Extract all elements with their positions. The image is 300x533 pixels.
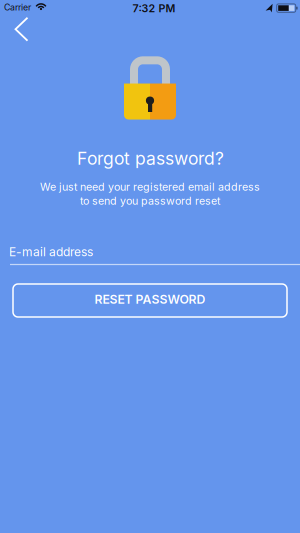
- staticText: Forgot password?: [77, 148, 224, 169]
- staticText: We just need your registered email addre…: [40, 180, 260, 193]
- staticText: RESET PASSWORD: [94, 292, 205, 307]
- staticText: E-mail address: [9, 244, 93, 259]
- staticText: 7:32 PM: [132, 2, 175, 15]
- button[interactable]: Back: [8, 13, 36, 45]
- staticText: to send you password reset: [80, 194, 220, 207]
- staticText: Carrier: [4, 2, 31, 12]
- button[interactable]: E-mail address: [0, 239, 300, 267]
- button[interactable]: RESET PASSWORD: [13, 284, 287, 317]
